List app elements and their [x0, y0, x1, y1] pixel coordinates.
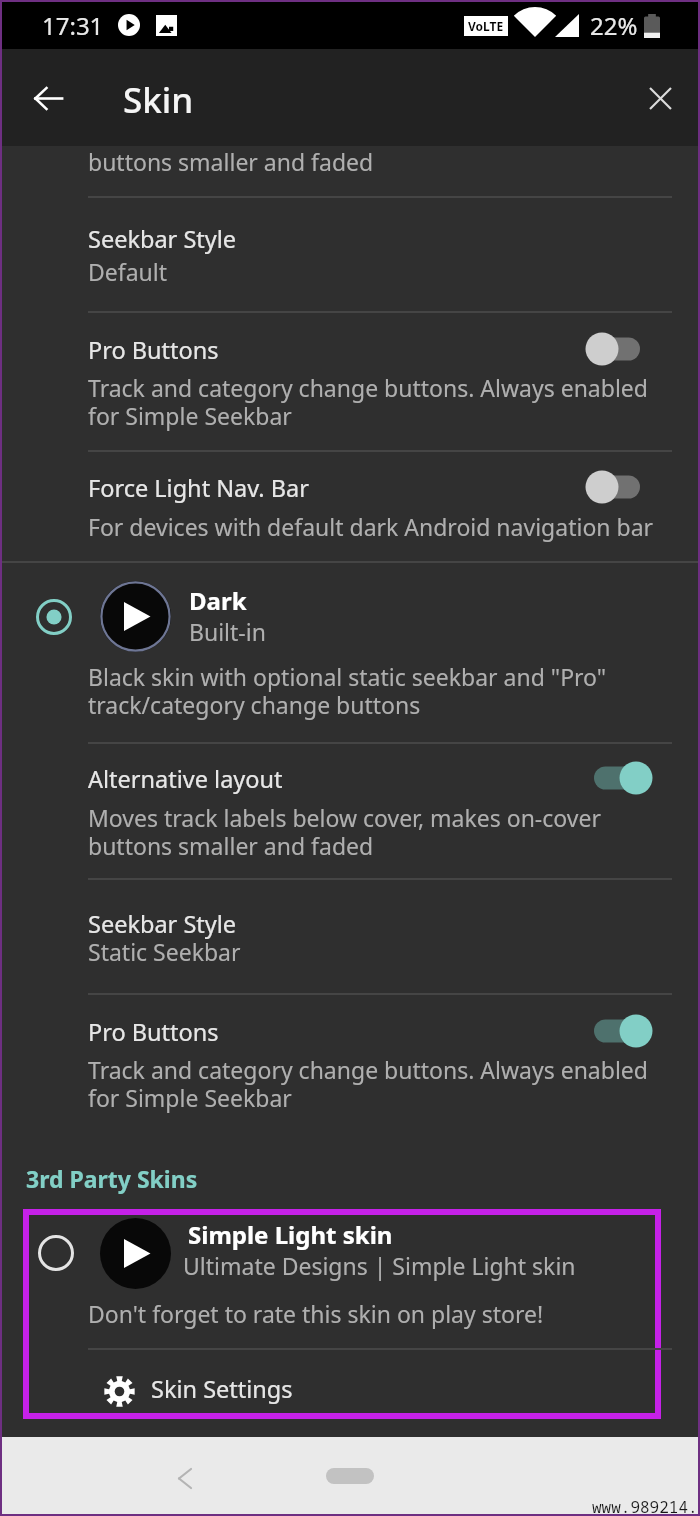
staticText: 22%: [590, 9, 638, 42]
staticText: Don't forget to rate this skin on play s…: [88, 1298, 544, 1329]
button[interactable]: Back: [162, 1455, 208, 1501]
staticText: Ultimate Designs | Simple Light skin: [183, 1250, 576, 1281]
staticText: Pro Buttons: [88, 1016, 219, 1048]
button[interactable]: Close: [632, 70, 688, 126]
button[interactable]: Pro Buttons: [0, 1005, 700, 1059]
staticText: Track and category change buttons. Alway…: [88, 1054, 648, 1114]
button[interactable]: Force Light Nav. Bar: [0, 461, 700, 515]
staticText: Moves track labels below cover, makes on…: [88, 802, 601, 862]
staticText: VoLTE: [468, 18, 504, 34]
button[interactable]: [23, 1359, 661, 1419]
staticText: For devices with default dark Android na…: [88, 511, 654, 542]
staticText: 3rd Party Skins: [26, 1163, 198, 1194]
staticText: buttons smaller and faded: [88, 146, 374, 177]
staticText: Static Seekbar: [88, 936, 241, 967]
button[interactable]: Alternative layout: [0, 752, 700, 806]
staticText: Built-in: [189, 616, 266, 647]
staticText: Skin Settings: [151, 1373, 293, 1405]
staticText: Seekbar Style: [88, 908, 237, 940]
button[interactable]: Back: [20, 70, 76, 126]
staticText: Alternative layout: [88, 763, 283, 795]
staticText: Black skin with optional static seekbar …: [88, 661, 607, 721]
staticText: Track and category change buttons. Alway…: [88, 372, 648, 432]
button[interactable]: Home: [326, 1468, 374, 1484]
staticText: Dark: [189, 584, 247, 617]
staticText: Force Light Nav. Bar: [88, 472, 309, 504]
button[interactable]: [0, 573, 700, 661]
staticText: Seekbar Style: [88, 223, 237, 255]
staticText: Pro Buttons: [88, 334, 219, 366]
staticText: Default: [88, 256, 168, 287]
staticText: Simple Light skin: [188, 1218, 393, 1251]
staticText: www.989214.com: [592, 1496, 700, 1516]
staticText: 17:31: [42, 9, 104, 42]
staticText: Skin: [123, 76, 194, 124]
button[interactable]: Pro Buttons: [0, 323, 700, 377]
